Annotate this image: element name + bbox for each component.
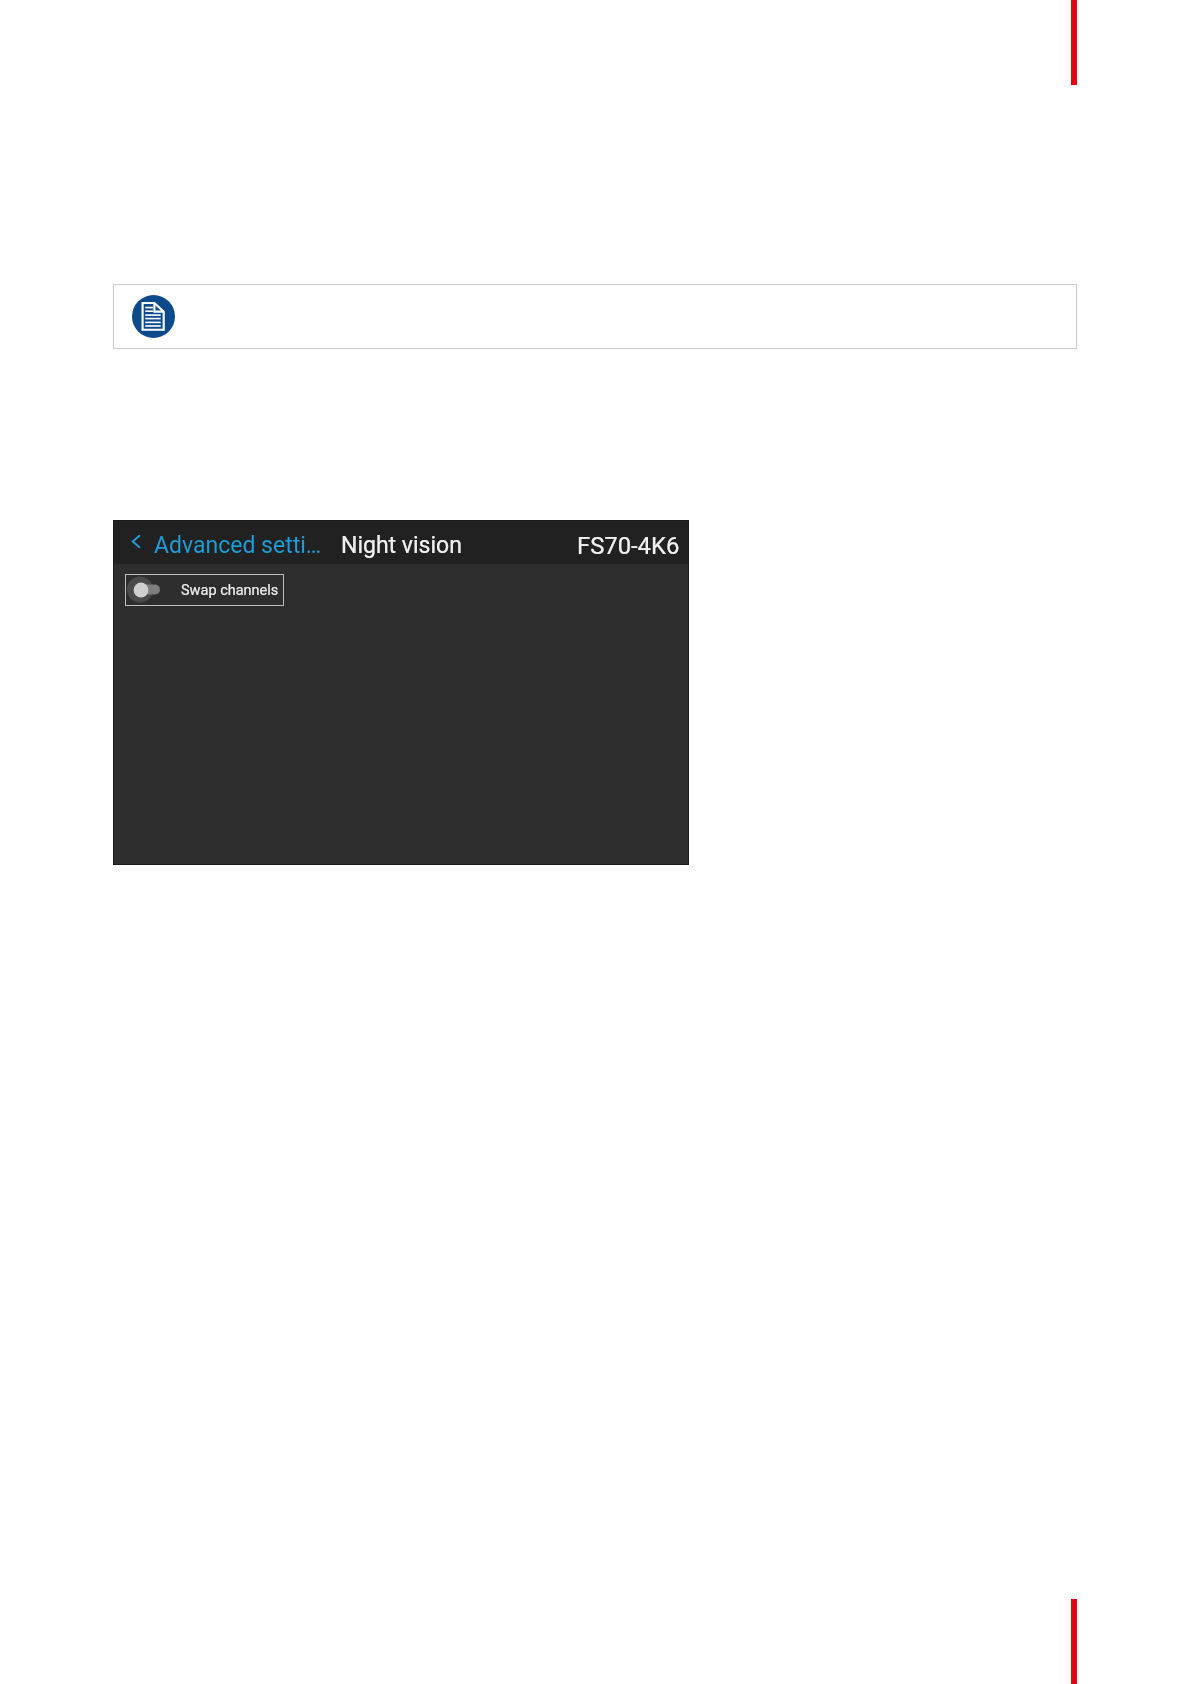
staticText: Advanced setti… [154,532,322,559]
other: Note [132,295,175,338]
button[interactable]: Back [127,520,325,564]
staticText: Swap channels [181,582,279,599]
staticText: FS70-4K6 [577,532,680,560]
staticText: Night vision [341,532,462,559]
other: Back [132,535,140,548]
button[interactable]: Swap channels [125,574,284,606]
